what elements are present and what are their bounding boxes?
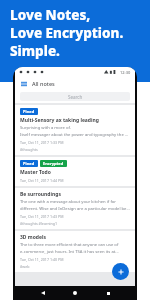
staticText: e-commerce, just hours. Int TSA it has s…: [20, 249, 119, 255]
button[interactable]: Search: [20, 92, 130, 101]
button[interactable]: Home: [70, 288, 80, 298]
staticText: All notes: [32, 80, 55, 87]
staticText: Pined: [23, 161, 35, 166]
button[interactable]: Back: [38, 288, 48, 298]
staticText: different. Wise and InDesign are a parti…: [20, 206, 130, 212]
button[interactable]: Be surroundings: [15, 188, 135, 229]
staticText: Tue, Oct 11, 2017 1:44 PM: [20, 178, 64, 183]
staticText: Search: [68, 94, 83, 100]
staticText: 3D models: [20, 234, 46, 241]
button[interactable]: Pined: [15, 105, 135, 155]
staticText: Itself messager about the power and typo…: [20, 132, 130, 138]
staticText: Master Todo: [20, 169, 51, 176]
staticText: The one with a message about your kitche…: [20, 199, 117, 205]
button[interactable]: New note: [112, 263, 129, 280]
staticText: Tue, Oct 11, 2017 1:43 PM: [20, 214, 64, 219]
button[interactable]: Menu: [20, 80, 28, 88]
staticText: Love Notes,: [10, 6, 91, 24]
staticText: Love Encryption.: [10, 24, 124, 42]
staticText: Simple.: [10, 42, 60, 60]
staticText: Surprising with a more of.: [20, 125, 71, 131]
staticText: Tue, Oct 11, 2017 1:40 PM: [20, 257, 64, 262]
staticText: Multi-Sensory ax taking leading: [20, 117, 99, 124]
button[interactable]: 3D models: [15, 231, 135, 272]
staticText: 12:30: [120, 70, 131, 75]
staticText: #thoughts: [20, 147, 38, 152]
button[interactable]: Recents: [103, 288, 113, 298]
staticText: Tue, Oct 11, 2017 1:33 PM: [20, 140, 64, 145]
staticText: #thoughts #learning1: [20, 221, 58, 226]
staticText: The to three more efficient that anyone …: [20, 242, 119, 248]
button[interactable]: Pined: [15, 157, 135, 186]
staticText: Be surroundings: [20, 191, 61, 198]
staticText: Pined: [23, 109, 35, 114]
staticText: Encrypted: [43, 161, 64, 166]
staticText: #web: [20, 264, 30, 269]
